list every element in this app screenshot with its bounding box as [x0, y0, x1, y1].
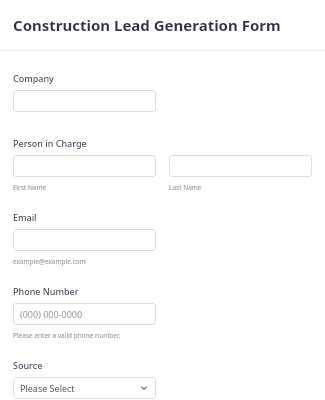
staticText: Company: [13, 72, 54, 84]
staticText: (000) 000-0000: [20, 308, 83, 320]
staticText: example@example.com: [13, 257, 86, 266]
button[interactable]: Email: [13, 229, 156, 251]
staticText: Email: [13, 211, 37, 223]
staticText: First Name: [13, 183, 47, 192]
staticText: Please enter a valid phone number.: [13, 331, 121, 340]
button[interactable]: Last Name: [169, 155, 312, 177]
button[interactable]: Phone Number: [13, 303, 156, 325]
staticText: Please Select: [20, 382, 75, 394]
staticText: Person in Charge: [13, 137, 87, 149]
button[interactable]: Company: [13, 90, 156, 112]
staticText: Phone Number: [13, 285, 79, 297]
button[interactable]: First Name: [13, 155, 156, 177]
staticText: Last Name: [169, 183, 202, 192]
staticText: Source: [13, 359, 43, 371]
staticText: Construction Lead Generation Form: [13, 15, 281, 35]
button[interactable]: Source, Please Select: [13, 377, 156, 399]
